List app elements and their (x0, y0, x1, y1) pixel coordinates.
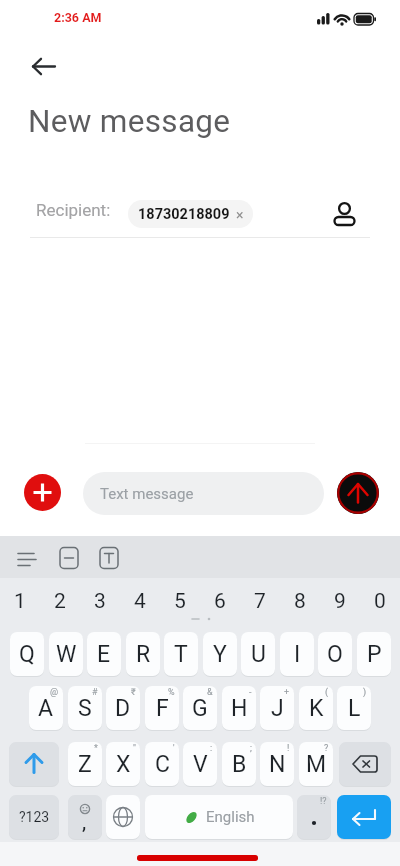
button[interactable]: V (183, 742, 217, 786)
staticText: + (284, 687, 290, 698)
button[interactable] (328, 194, 364, 232)
button[interactable]: 9 (320, 586, 360, 616)
staticText: H (231, 695, 248, 722)
staticText: , (82, 811, 87, 833)
button[interactable]: 1 (0, 586, 40, 616)
staticText: V (193, 751, 208, 778)
staticText: G (192, 695, 208, 722)
staticText: 9 (334, 589, 346, 614)
staticText: !? (320, 796, 327, 807)
staticText: × (236, 207, 244, 223)
staticText: Z (78, 751, 92, 778)
button[interactable] (90, 542, 128, 572)
staticText: ' (173, 743, 175, 754)
staticText: 2 (54, 589, 66, 614)
staticText: ?123 (19, 809, 50, 825)
button[interactable]: N (260, 742, 294, 786)
staticText: ; (250, 743, 252, 754)
button[interactable] (106, 795, 140, 839)
staticText: 7 (254, 589, 266, 614)
button[interactable]: 0 (360, 586, 400, 616)
button[interactable]: 7 (240, 586, 280, 616)
button[interactable] (24, 474, 61, 511)
button[interactable]: W (49, 632, 83, 676)
staticText: 6 (214, 589, 226, 614)
staticText: U (251, 641, 266, 668)
button[interactable]: O (318, 632, 352, 676)
button[interactable]: 18730218809 (128, 200, 253, 228)
button[interactable]: A (29, 686, 63, 730)
button[interactable]: D (106, 686, 140, 730)
staticText: K (309, 695, 324, 722)
button[interactable]: C (145, 742, 179, 786)
button[interactable]: T (164, 632, 198, 676)
button[interactable] (339, 742, 391, 786)
button[interactable]: 6 (200, 586, 240, 616)
button[interactable]: Z (68, 742, 102, 786)
staticText: J (271, 695, 284, 722)
staticText: ) (363, 687, 367, 698)
button[interactable]: F (145, 686, 179, 730)
button[interactable]: M (299, 742, 333, 786)
staticText: ! (287, 743, 290, 754)
button[interactable]: 3 (80, 586, 120, 616)
staticText: ? (324, 743, 329, 754)
staticText: " (133, 743, 136, 754)
button[interactable]: J (260, 686, 294, 730)
button[interactable] (50, 542, 88, 572)
button[interactable]: 8 (280, 586, 320, 616)
button[interactable]: English (145, 795, 293, 839)
button[interactable]: R (126, 632, 160, 676)
staticText: W (56, 641, 77, 668)
button[interactable] (337, 795, 391, 839)
staticText: D (115, 695, 131, 722)
button[interactable] (9, 742, 59, 786)
staticText: # (92, 687, 98, 698)
staticText: * (94, 743, 98, 754)
staticText: Recipient: (36, 200, 111, 220)
button[interactable]: H (222, 686, 256, 730)
staticText: P (367, 641, 382, 668)
button[interactable]: 4 (120, 586, 160, 616)
button[interactable]: B (222, 742, 256, 786)
staticText: L (348, 695, 361, 722)
button[interactable]: P (357, 632, 391, 676)
staticText: M (306, 751, 327, 778)
button[interactable]: U (241, 632, 275, 676)
staticText: R (136, 641, 151, 668)
staticText: % (168, 687, 175, 698)
staticText: S (78, 695, 92, 722)
staticText: X (116, 751, 131, 778)
staticText: Y (213, 641, 227, 668)
button[interactable]: Y (203, 632, 237, 676)
staticText: Text message (100, 485, 194, 503)
button[interactable] (337, 472, 379, 514)
button[interactable]: S (68, 686, 102, 730)
button[interactable]: !? (297, 795, 331, 839)
staticText: 8 (294, 589, 306, 614)
button[interactable]: Text message (83, 472, 324, 515)
button[interactable]: L (337, 686, 371, 730)
staticText: @ (50, 687, 59, 698)
button[interactable]: I (280, 632, 314, 676)
staticText: 4 (134, 589, 146, 614)
staticText: Q (19, 641, 35, 668)
button[interactable]: K (299, 686, 333, 730)
staticText: 2:36 AM (54, 10, 102, 25)
button[interactable] (8, 542, 46, 572)
button[interactable]: , (68, 795, 102, 839)
button[interactable]: G (183, 686, 217, 730)
button[interactable] (22, 50, 62, 86)
staticText: E (97, 641, 111, 668)
staticText: & (207, 687, 213, 698)
button[interactable]: 2 (40, 586, 80, 616)
staticText: A (38, 695, 54, 722)
button[interactable]: E (87, 632, 121, 676)
staticText: : (210, 743, 213, 754)
staticText: English (206, 808, 255, 826)
button[interactable]: ?123 (9, 795, 59, 839)
staticText: 5 (174, 589, 186, 614)
button[interactable]: X (106, 742, 140, 786)
button[interactable]: Q (10, 632, 44, 676)
button[interactable]: 5 (160, 586, 200, 616)
